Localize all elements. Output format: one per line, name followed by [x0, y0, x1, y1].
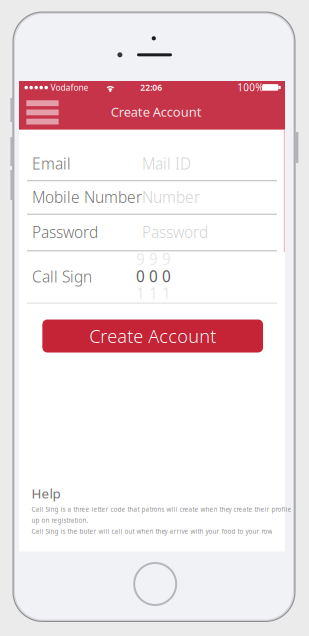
staticText: Mobile Number	[32, 186, 142, 207]
staticText: Password	[142, 221, 208, 243]
staticText: Create Account	[111, 103, 202, 121]
staticText: Help	[31, 484, 60, 502]
staticText: Call Sign	[32, 266, 92, 287]
button[interactable]: Password	[19, 214, 285, 250]
staticText: Number	[142, 186, 200, 207]
staticText: up on registration.	[31, 516, 88, 525]
staticText: Vodafone	[51, 82, 89, 93]
staticText: Mail ID	[142, 153, 191, 174]
staticText: Email	[32, 153, 71, 174]
staticText: Call Sing is the buter will call out whe…	[31, 527, 272, 535]
staticText: Call Sing is a three letter code that pa…	[31, 505, 291, 514]
button[interactable]: Menu	[20, 96, 64, 128]
button[interactable]: Call Sign	[19, 250, 285, 303]
staticText: 0 0 0	[136, 266, 171, 287]
staticText: Password	[32, 221, 98, 243]
staticText: 22:06	[140, 82, 162, 93]
button[interactable]: Create Account	[42, 319, 263, 352]
button[interactable]: Mobile Number	[19, 180, 285, 214]
staticText: 9 9 9	[136, 249, 171, 269]
button[interactable]: Email	[19, 147, 285, 180]
staticText: 1 1 1	[136, 283, 171, 304]
staticText: 100%	[237, 81, 263, 94]
staticText: Create Account	[89, 324, 216, 348]
